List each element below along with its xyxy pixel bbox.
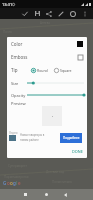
staticText: Детский сад: [46, 170, 64, 174]
button[interactable]: Home: [40, 189, 52, 200]
button[interactable]: Settings: [67, 8, 79, 19]
button[interactable]: Brush: [55, 8, 67, 19]
staticText: DONE: [72, 149, 83, 154]
button[interactable]: Share: [43, 8, 55, 19]
staticText: Парикмахерская: [4, 175, 29, 179]
staticText: G: [3, 180, 7, 186]
staticText: Tip: [11, 67, 18, 73]
staticText: Preview: [11, 101, 26, 106]
button[interactable]: Back: [60, 189, 72, 200]
staticText: l: [16, 180, 18, 186]
button[interactable]: [27, 79, 84, 87]
staticText: g: [13, 180, 16, 186]
staticText: Подробнее: [63, 136, 80, 140]
staticText: Opacity: [11, 93, 27, 98]
staticText: Size: [11, 81, 27, 86]
button[interactable]: [27, 91, 84, 99]
staticText: 13:31: [2, 2, 13, 7]
staticText: Color: [11, 41, 23, 47]
staticText: o: [10, 180, 13, 186]
staticText: Round: [37, 68, 48, 73]
staticText: o: [7, 180, 10, 186]
staticText: Аптека: [40, 21, 50, 25]
button[interactable]: DONE: [70, 147, 85, 156]
button[interactable]: Color: [7, 38, 87, 50]
button[interactable]: Square: [54, 68, 72, 73]
staticText: Яндекс: [9, 131, 18, 135]
button[interactable]: Emboss: [7, 51, 87, 63]
button[interactable]: Подробнее: [60, 133, 82, 143]
button[interactable]: Round: [31, 68, 48, 73]
button[interactable]: Save: [31, 8, 43, 19]
staticText: Новые квартиры в: [20, 133, 45, 137]
button[interactable]: Recent apps: [19, 189, 31, 200]
staticText: Супермаркет: [8, 164, 28, 168]
staticText: Emboss: [11, 54, 28, 60]
button[interactable]: Done: [19, 8, 31, 19]
button[interactable]: More options: [79, 8, 91, 19]
staticText: Поликлиника: [52, 180, 72, 184]
staticText: Square: [60, 68, 72, 73]
staticText: новом районе: [20, 138, 39, 142]
staticText: e: [18, 180, 21, 186]
